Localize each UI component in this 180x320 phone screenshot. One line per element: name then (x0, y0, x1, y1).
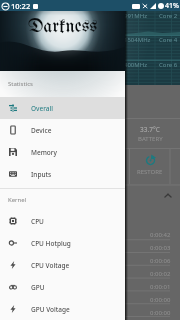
button[interactable]: 0:00:00 (0, 319, 180, 320)
staticText: 1190MHz (2, 12, 29, 20)
staticText: 1504MHz (124, 36, 151, 44)
staticText: Core 1 (101, 12, 120, 20)
button[interactable]: 0:00:42 (0, 228, 180, 241)
button[interactable]: GPU (0, 276, 125, 298)
staticText: Inputs (31, 170, 52, 179)
staticText: 0:00:06 (150, 257, 171, 265)
staticText: 0:00:42 (150, 231, 171, 239)
staticText: Core 6 (159, 61, 178, 69)
staticText: CPU (31, 217, 44, 226)
staticText: Memory (31, 148, 58, 157)
staticText: 41% (165, 1, 179, 11)
staticText: 0:00:00 (150, 296, 171, 304)
button[interactable]: 0:00:06 (0, 254, 180, 267)
staticText: Kernel (8, 196, 27, 204)
staticText: 0:00:02 (150, 270, 171, 278)
button[interactable]: Inputs (0, 163, 125, 185)
button[interactable]: CPU Hotplug (0, 232, 125, 254)
staticText: 1804MHz (2, 36, 29, 44)
button[interactable]: 0:00:00 (0, 293, 180, 306)
staticText: 0:00:01 (150, 283, 171, 291)
staticText: Overall (31, 104, 54, 113)
staticText: 400MHz (124, 61, 148, 69)
staticText: CPU Voltage (31, 261, 70, 270)
staticText: Darkness (28, 17, 98, 37)
staticText: CPU Hotplug (31, 239, 71, 248)
staticText: GPU Voltage (31, 305, 70, 314)
staticText: BATTERY (138, 135, 163, 143)
staticText: 0:00:03 (150, 244, 171, 252)
button[interactable]: 0:00:02 (0, 267, 180, 280)
button[interactable]: GPU Voltage (0, 298, 125, 320)
button[interactable]: CPU Voltage (0, 254, 125, 276)
staticText: 991MHz (124, 12, 148, 20)
staticText: Core 3 (101, 36, 120, 44)
button[interactable]: Overall (0, 97, 125, 119)
button[interactable]: Device (0, 119, 125, 141)
staticText: Core 4 (159, 36, 178, 44)
button[interactable]: 0:00:01 (0, 280, 180, 293)
staticText: Core 2 (159, 12, 178, 20)
staticText: 10:22 (11, 1, 31, 11)
button[interactable]: 0:00:00 (0, 306, 180, 319)
staticText: Device (31, 126, 52, 135)
button[interactable]: Restore (130, 155, 170, 176)
button[interactable]: Memory (0, 141, 125, 163)
button[interactable]: CPU (0, 210, 125, 232)
staticText: Statistics (8, 80, 33, 88)
staticText: GPU (31, 283, 45, 292)
staticText: RESTORE (137, 168, 163, 176)
button[interactable]: 0:00:03 (0, 241, 180, 254)
button[interactable]: Collapse (164, 192, 172, 200)
staticText: 33.7°C (140, 125, 160, 134)
staticText: 0:00:00 (150, 309, 171, 317)
